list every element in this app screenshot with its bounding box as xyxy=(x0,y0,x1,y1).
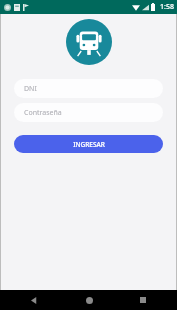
staticText: Contraseña xyxy=(24,108,62,118)
button[interactable]: Home xyxy=(69,290,109,310)
button[interactable]: Contraseña xyxy=(14,103,163,122)
staticText: DNI xyxy=(24,84,37,94)
staticText: INGRESAR xyxy=(73,140,105,149)
other: Bus logo xyxy=(66,19,112,65)
button[interactable]: INGRESAR xyxy=(14,135,163,153)
staticText: 1:58 xyxy=(160,2,174,12)
button[interactable]: DNI xyxy=(14,79,163,98)
button[interactable]: Back xyxy=(14,290,54,310)
button[interactable]: Recent apps xyxy=(123,290,163,310)
